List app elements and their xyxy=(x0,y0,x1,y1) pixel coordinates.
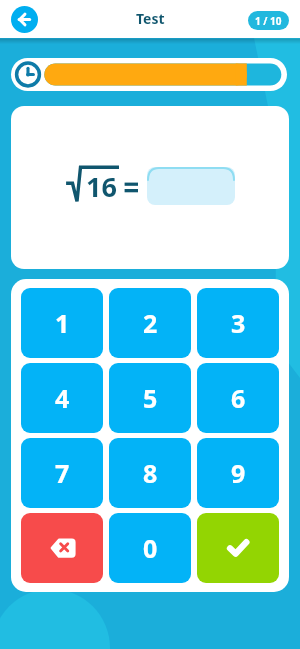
button[interactable]: Timer xyxy=(11,58,287,91)
button[interactable]: 1 xyxy=(21,288,103,358)
staticText: 4 xyxy=(55,381,70,415)
staticText: 1 / 10 xyxy=(255,14,282,28)
staticText: 8 xyxy=(143,456,158,490)
button[interactable]: Back xyxy=(11,6,38,33)
staticText: 0 xyxy=(143,531,158,565)
button[interactable]: 0 xyxy=(109,513,191,583)
staticText: 16 xyxy=(86,168,117,205)
staticText: 1 xyxy=(55,306,70,340)
staticText: 7 xyxy=(55,456,70,490)
button[interactable]: Submit xyxy=(197,513,279,583)
button[interactable]: Answer field xyxy=(147,167,235,205)
button[interactable]: 7 xyxy=(21,438,103,508)
button[interactable]: 6 xyxy=(197,363,279,433)
button[interactable]: Backspace xyxy=(21,513,103,583)
button[interactable]: 3 xyxy=(197,288,279,358)
button[interactable]: 9 xyxy=(197,438,279,508)
button[interactable]: 8 xyxy=(109,438,191,508)
staticText: 2 xyxy=(143,306,158,340)
staticText: 6 xyxy=(231,381,246,415)
staticText: Test xyxy=(136,9,165,28)
button[interactable]: 1 / 10 xyxy=(248,11,289,30)
button[interactable]: 5 xyxy=(109,363,191,433)
button[interactable]: 4 xyxy=(21,363,103,433)
button[interactable]: 2 xyxy=(109,288,191,358)
staticText: 3 xyxy=(231,306,246,340)
staticText: 9 xyxy=(231,456,246,490)
staticText: 5 xyxy=(143,381,158,415)
